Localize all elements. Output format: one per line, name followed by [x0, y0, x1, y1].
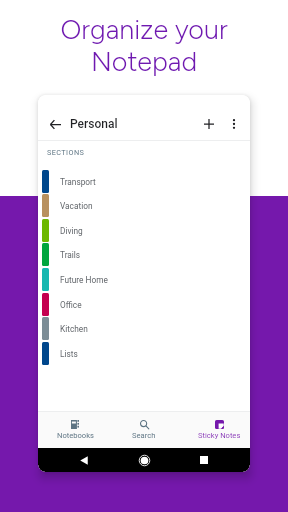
- button[interactable]: Home: [135, 448, 153, 472]
- staticText: SECTIONS: [47, 148, 85, 157]
- button[interactable]: Office: [38, 292, 250, 317]
- staticText: Trails: [60, 250, 81, 260]
- button[interactable]: Trails: [38, 242, 250, 267]
- button[interactable]: Recents: [195, 448, 213, 472]
- staticText: Diving: [60, 226, 83, 236]
- staticText: Notebooks: [57, 431, 94, 440]
- button[interactable]: Transport: [38, 169, 250, 194]
- button[interactable]: More options: [222, 112, 246, 136]
- staticText: Future Home: [60, 275, 108, 285]
- staticText: Sticky Notes: [198, 431, 241, 440]
- staticText: Organize your Notepad: [60, 13, 228, 77]
- button[interactable]: Back: [43, 112, 67, 136]
- button[interactable]: Back: [75, 448, 93, 472]
- button[interactable]: Sticky Notes: [191, 412, 247, 448]
- button[interactable]: Vacation: [38, 193, 250, 218]
- staticText: Transport: [60, 177, 96, 187]
- staticText: Lists: [60, 349, 78, 359]
- staticText: Vacation: [60, 201, 93, 211]
- button[interactable]: Diving: [38, 218, 250, 243]
- staticText: Office: [60, 300, 82, 310]
- button[interactable]: Lists: [38, 341, 250, 366]
- button[interactable]: Kitchen: [38, 316, 250, 341]
- button[interactable]: Search: [116, 412, 172, 448]
- button[interactable]: Notebooks: [47, 412, 103, 448]
- button[interactable]: Future Home: [38, 267, 250, 292]
- staticText: Search: [132, 431, 156, 440]
- staticText: Personal: [70, 117, 118, 131]
- staticText: Kitchen: [60, 324, 88, 334]
- button[interactable]: Add: [197, 112, 221, 136]
